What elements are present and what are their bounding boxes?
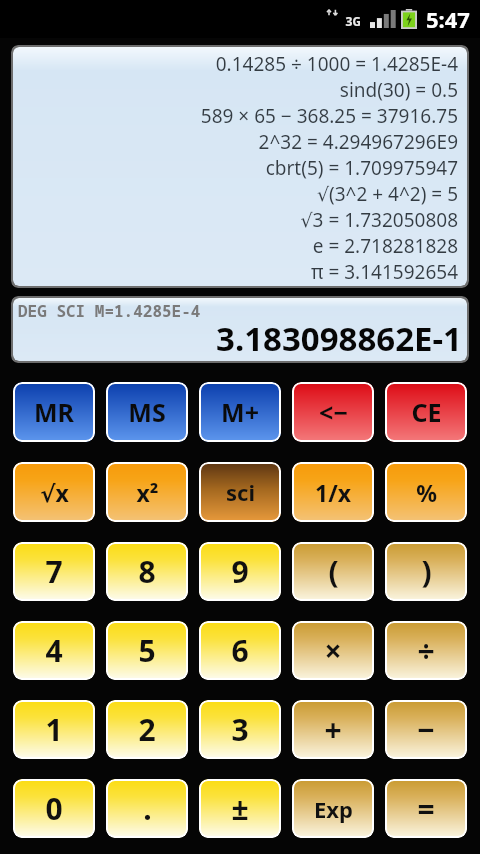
- staticText: M+: [221, 395, 259, 429]
- staticText: Exp: [314, 794, 353, 824]
- staticText: 589 × 65 − 368.25 = 37916.75: [21, 103, 458, 129]
- staticText: %: [416, 477, 437, 508]
- staticText: MR: [34, 395, 74, 429]
- staticText: =: [417, 788, 435, 829]
- staticText: 2^32 = 4.294967296E9: [21, 129, 458, 155]
- button[interactable]: 7: [13, 542, 95, 601]
- staticText: 0: [45, 788, 63, 829]
- button[interactable]: MS: [106, 382, 188, 442]
- button[interactable]: +: [292, 700, 374, 759]
- staticText: π = 3.141592654: [21, 259, 458, 285]
- staticText: <−: [319, 395, 348, 429]
- staticText: 0.14285 ÷ 1000 = 1.4285E-4: [21, 51, 458, 77]
- staticText: √(3^2 + 4^2) = 5: [21, 181, 458, 207]
- button[interactable]: x²: [106, 462, 188, 522]
- staticText: 5: [138, 630, 156, 671]
- button[interactable]: ±: [199, 779, 281, 838]
- staticText: DEG SCI M=1.4285E-4: [18, 300, 201, 322]
- staticText: +: [324, 709, 342, 750]
- button[interactable]: DEG SCI M=1.4285E-4: [13, 298, 467, 361]
- staticText: (: [328, 551, 339, 592]
- staticText: √3 = 1.732050808: [21, 207, 458, 233]
- button[interactable]: (: [292, 542, 374, 601]
- staticText: CE: [411, 395, 442, 429]
- button[interactable]: 1: [13, 700, 95, 759]
- staticText: 6: [231, 630, 249, 671]
- button[interactable]: M+: [199, 382, 281, 442]
- staticText: 4: [45, 630, 63, 671]
- staticText: 7: [45, 551, 63, 592]
- button[interactable]: 4: [13, 621, 95, 680]
- button[interactable]: 2: [106, 700, 188, 759]
- button[interactable]: CE: [385, 382, 467, 442]
- button[interactable]: 1/x: [292, 462, 374, 522]
- button[interactable]: √x: [13, 462, 95, 522]
- button[interactable]: %: [385, 462, 467, 522]
- button[interactable]: 6: [199, 621, 281, 680]
- staticText: ): [421, 551, 432, 592]
- staticText: sind(30) = 0.5: [21, 77, 458, 103]
- button[interactable]: 8: [106, 542, 188, 601]
- button[interactable]: −: [385, 700, 467, 759]
- staticText: x²: [136, 477, 159, 508]
- staticText: 1: [45, 709, 63, 750]
- button[interactable]: ): [385, 542, 467, 601]
- button[interactable]: 3: [199, 700, 281, 759]
- staticText: ±: [231, 788, 249, 829]
- staticText: 3.183098862E-1: [216, 316, 462, 361]
- staticText: −: [417, 709, 435, 750]
- button[interactable]: Backspace: [292, 382, 374, 442]
- staticText: .: [143, 788, 152, 829]
- button[interactable]: =: [385, 779, 467, 838]
- staticText: e = 2.718281828: [21, 233, 458, 259]
- staticText: 2: [138, 709, 156, 750]
- staticText: 1/x: [315, 477, 351, 508]
- button[interactable]: MR: [13, 382, 95, 442]
- button[interactable]: ×: [292, 621, 374, 680]
- staticText: sci: [226, 477, 255, 507]
- button[interactable]: 5: [106, 621, 188, 680]
- button[interactable]: sci: [199, 462, 281, 522]
- button[interactable]: 0.14285 ÷ 1000 = 1.4285E-4: [13, 47, 467, 286]
- staticText: cbrt(5) = 1.709975947: [21, 155, 458, 181]
- staticText: 9: [231, 551, 249, 592]
- staticText: 3G: [345, 12, 361, 30]
- staticText: 8: [138, 551, 156, 592]
- staticText: 5:47: [426, 4, 470, 34]
- staticText: √x: [40, 477, 69, 508]
- staticText: 3: [231, 709, 249, 750]
- button[interactable]: Exp: [292, 779, 374, 838]
- staticText: MS: [128, 395, 166, 429]
- staticText: ÷: [417, 630, 435, 671]
- staticText: ×: [324, 630, 342, 671]
- button[interactable]: .: [106, 779, 188, 838]
- button[interactable]: 0: [13, 779, 95, 838]
- button[interactable]: ÷: [385, 621, 467, 680]
- button[interactable]: 9: [199, 542, 281, 601]
